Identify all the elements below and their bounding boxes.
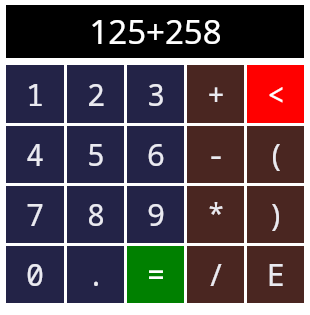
button[interactable]: 8 xyxy=(67,186,124,243)
button[interactable]: = xyxy=(127,246,184,303)
button[interactable]: . xyxy=(67,246,124,303)
button[interactable]: 1 xyxy=(6,65,64,123)
staticText: 8 xyxy=(87,194,105,235)
staticText: 1 xyxy=(26,74,44,115)
button[interactable]: 5 xyxy=(67,126,124,183)
staticText: 3 xyxy=(147,74,165,115)
staticText: 125+258 xyxy=(89,9,222,54)
button[interactable]: - xyxy=(187,126,244,183)
staticText: . xyxy=(87,254,105,295)
staticText: + xyxy=(207,74,225,115)
staticText: - xyxy=(207,134,225,175)
staticText: E xyxy=(267,254,285,295)
button[interactable]: 0 xyxy=(6,246,64,303)
button[interactable]: * xyxy=(187,186,244,243)
button[interactable]: ) xyxy=(247,186,304,243)
staticText: 0 xyxy=(26,254,44,295)
button[interactable]: + xyxy=(187,65,244,123)
staticText: 5 xyxy=(87,134,105,175)
staticText: 4 xyxy=(26,134,44,175)
staticText: ( xyxy=(267,134,285,175)
button[interactable]: E xyxy=(247,246,304,303)
staticText: / xyxy=(207,254,225,295)
staticText: * xyxy=(207,194,225,235)
button[interactable]: 7 xyxy=(6,186,64,243)
button[interactable]: / xyxy=(187,246,244,303)
button[interactable]: 6 xyxy=(127,126,184,183)
button[interactable]: 2 xyxy=(67,65,124,123)
staticText: 9 xyxy=(147,194,165,235)
button[interactable]: ( xyxy=(247,126,304,183)
staticText: < xyxy=(267,74,285,115)
staticText: 7 xyxy=(26,194,44,235)
staticText: = xyxy=(147,254,165,295)
staticText: ) xyxy=(267,194,285,235)
button[interactable]: 3 xyxy=(127,65,184,123)
staticText: 2 xyxy=(87,74,105,115)
staticText: 6 xyxy=(147,134,165,175)
button[interactable]: Expression display xyxy=(6,5,304,58)
button[interactable]: 4 xyxy=(6,126,64,183)
button[interactable]: 9 xyxy=(127,186,184,243)
button[interactable]: < xyxy=(247,65,304,123)
